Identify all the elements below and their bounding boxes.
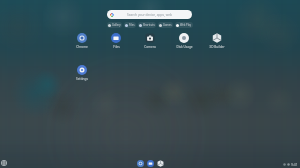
button[interactable]: Web Play <box>175 22 193 28</box>
button[interactable]: Apps <box>157 160 164 167</box>
staticText: Settings <box>76 77 88 81</box>
staticText: Disk Usage <box>176 45 193 49</box>
staticText: Files <box>113 45 120 49</box>
staticText: 3D Builder <box>209 45 225 49</box>
button[interactable]: Settings <box>69 65 95 81</box>
button[interactable]: Disk Usage <box>171 33 197 49</box>
staticText: Games <box>163 23 172 27</box>
button[interactable]: 3D Builder <box>204 33 230 49</box>
button[interactable]: Files <box>124 22 136 28</box>
button[interactable]: Launcher <box>1 160 7 166</box>
button[interactable]: Chrome <box>69 33 95 49</box>
button[interactable]: Search your device, apps, web <box>107 10 192 19</box>
staticText: Shortcuts <box>143 23 155 27</box>
staticText: Web Play <box>180 23 192 27</box>
button[interactable]: Files <box>103 33 129 49</box>
button[interactable]: Gallery <box>107 22 122 28</box>
button[interactable]: Camera <box>137 33 163 49</box>
staticText: Search your device, apps, web <box>127 13 172 17</box>
staticText: Gallery <box>112 23 121 27</box>
button[interactable]: Shortcuts <box>138 22 156 28</box>
button[interactable]: Chrome <box>137 160 144 167</box>
staticText: Files <box>129 23 135 27</box>
staticText: Chrome <box>76 45 88 49</box>
staticText: Camera <box>144 45 156 49</box>
button[interactable]: Games <box>158 22 173 28</box>
button[interactable]: 9:41 <box>282 162 299 167</box>
staticText: 9:41 <box>291 162 298 167</box>
button[interactable]: Files <box>147 160 154 167</box>
